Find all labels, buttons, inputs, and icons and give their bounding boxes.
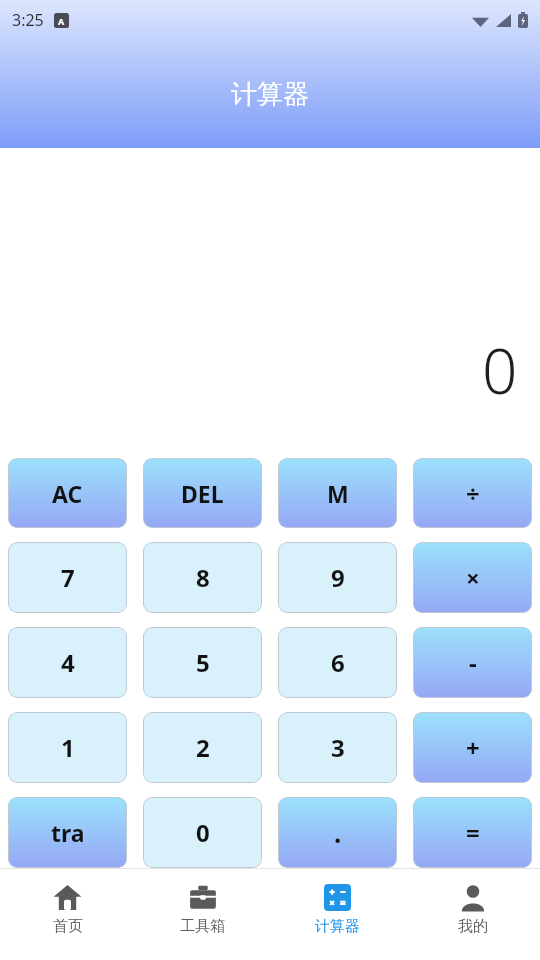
button[interactable]: 0 xyxy=(143,797,262,868)
staticText: 0 xyxy=(196,816,210,849)
staticText: 0 xyxy=(482,328,518,412)
staticText: A xyxy=(58,15,65,27)
staticText: 工具箱 xyxy=(180,917,225,936)
button[interactable]: ÷ xyxy=(413,458,532,528)
staticText: 2 xyxy=(196,731,210,764)
button[interactable]: 6 xyxy=(278,627,397,698)
staticText: 3 xyxy=(331,731,345,764)
button[interactable]: 1 xyxy=(8,712,127,783)
staticText: 首页 xyxy=(53,917,83,936)
button[interactable]: × xyxy=(413,542,532,613)
staticText: + xyxy=(466,731,480,764)
staticText: 4 xyxy=(61,646,75,679)
staticText: ÷ xyxy=(466,477,480,510)
button[interactable]: 3 xyxy=(278,712,397,783)
button[interactable]: = xyxy=(413,797,532,868)
staticText: DEL xyxy=(181,478,224,509)
staticText: = xyxy=(466,816,480,849)
button[interactable]: 7 xyxy=(8,542,127,613)
button[interactable]: 8 xyxy=(143,542,262,613)
staticText: 计算器 xyxy=(0,78,540,111)
staticText: . xyxy=(334,815,342,850)
staticText: 我的 xyxy=(458,917,488,936)
button[interactable]: M xyxy=(278,458,397,528)
button[interactable]: 工具箱 xyxy=(135,874,270,960)
button[interactable]: DEL xyxy=(143,458,262,528)
staticText: AC xyxy=(52,478,83,509)
button[interactable]: 5 xyxy=(143,627,262,698)
staticText: 7 xyxy=(61,561,75,594)
button[interactable]: 9 xyxy=(278,542,397,613)
button[interactable]: 我的 xyxy=(405,874,540,960)
button[interactable]: 2 xyxy=(143,712,262,783)
staticText: M xyxy=(327,478,349,509)
staticText: tra xyxy=(51,817,85,848)
staticText: 8 xyxy=(196,561,210,594)
button[interactable]: - xyxy=(413,627,532,698)
staticText: 3:25 xyxy=(12,9,44,31)
staticText: 9 xyxy=(331,561,345,594)
staticText: × xyxy=(466,561,480,594)
button[interactable]: AC xyxy=(8,458,127,528)
staticText: - xyxy=(469,646,477,679)
staticText: 1 xyxy=(61,731,75,764)
staticText: 6 xyxy=(331,646,345,679)
button[interactable]: 4 xyxy=(8,627,127,698)
staticText: 计算器 xyxy=(315,917,360,936)
button[interactable]: . xyxy=(278,797,397,868)
staticText: 5 xyxy=(196,646,210,679)
button[interactable]: 计算器 xyxy=(270,874,405,960)
button[interactable]: 首页 xyxy=(0,874,135,960)
button[interactable]: + xyxy=(413,712,532,783)
button[interactable]: tra xyxy=(8,797,127,868)
